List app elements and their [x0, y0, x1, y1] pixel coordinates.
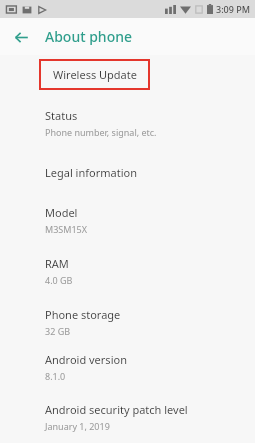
button[interactable]: Wireless Update [39, 59, 150, 90]
staticText: January 1, 2019 [45, 420, 110, 432]
button[interactable]: Back [7, 23, 35, 51]
button[interactable]: Android version [0, 352, 255, 382]
staticText: Android version [45, 352, 127, 367]
staticText: RAM [45, 256, 69, 271]
staticText: M3SM15X [45, 223, 87, 235]
button[interactable]: Android security patch level [0, 402, 255, 432]
staticText: Phone storage [45, 307, 121, 322]
staticText: Android security patch level [45, 402, 188, 417]
staticText: Wireless Update [53, 67, 137, 82]
button[interactable]: Legal information [0, 165, 255, 180]
staticText: Phone number, signal, etc. [45, 126, 157, 138]
staticText: 32 GB [45, 325, 71, 337]
staticText: 4.0 GB [45, 274, 73, 286]
staticText: Model [45, 205, 78, 220]
button[interactable]: Status [0, 108, 255, 138]
staticText: 3:09 PM [216, 3, 250, 15]
staticText: Status [45, 108, 78, 123]
staticText: Legal information [45, 165, 137, 180]
button[interactable]: Model [0, 205, 255, 235]
button[interactable]: RAM [0, 256, 255, 286]
staticText: 8.1.0 [45, 370, 66, 382]
staticText: About phone [45, 27, 133, 46]
button[interactable]: Phone storage [0, 307, 255, 337]
